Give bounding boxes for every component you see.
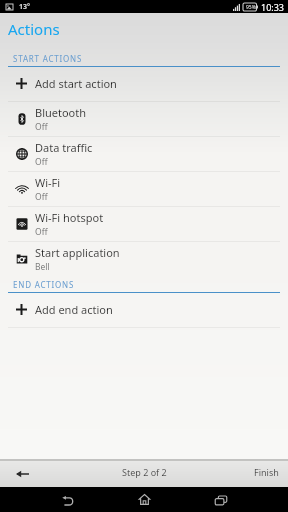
- staticText: Off: [35, 191, 48, 203]
- button[interactable]: Recent apps: [197, 487, 245, 512]
- button[interactable]: Add start action: [0, 66, 288, 102]
- staticText: Add start action: [35, 76, 117, 91]
- staticText: Finish: [254, 466, 279, 478]
- staticText: END ACTIONS: [13, 279, 75, 290]
- button[interactable]: Start application: [0, 242, 288, 277]
- button[interactable]: Data traffic: [0, 137, 288, 172]
- staticText: Add end action: [35, 302, 113, 317]
- staticText: 10:33: [261, 1, 285, 13]
- staticText: Off: [35, 226, 48, 238]
- staticText: Start application: [35, 245, 120, 260]
- button[interactable]: Finish: [245, 459, 288, 487]
- staticText: START ACTIONS: [13, 53, 83, 64]
- staticText: 95%: [246, 4, 256, 11]
- staticText: Step 2 of 2: [122, 466, 167, 478]
- button[interactable]: Wi-Fi: [0, 172, 288, 207]
- staticText: Bluetooth: [35, 105, 87, 120]
- button[interactable]: Back: [44, 487, 92, 512]
- button[interactable]: Bluetooth: [0, 102, 288, 137]
- staticText: Wi-Fi hotspot: [35, 210, 104, 225]
- staticText: Wi-Fi: [35, 175, 61, 190]
- button[interactable]: Home: [120, 487, 168, 512]
- staticText: Bell: [35, 261, 50, 273]
- staticText: Data traffic: [35, 140, 93, 155]
- button[interactable]: Back: [0, 460, 44, 487]
- staticText: 13°: [19, 2, 30, 12]
- button[interactable]: Add end action: [0, 292, 288, 328]
- staticText: Off: [35, 156, 48, 168]
- staticText: Off: [35, 121, 48, 133]
- staticText: Actions: [8, 19, 60, 39]
- button[interactable]: Wi-Fi hotspot: [0, 207, 288, 242]
